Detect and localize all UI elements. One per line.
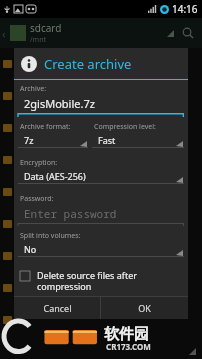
staticText: OK — [138, 302, 151, 314]
staticText: ‹ — [2, 26, 6, 41]
staticText: Encryption: — [20, 158, 58, 168]
button[interactable]: 2gisMobile.7z — [18, 96, 184, 117]
staticText: Data (AES-256) — [24, 170, 86, 182]
button[interactable]: No — [18, 243, 184, 263]
button[interactable]: Enter password — [18, 206, 184, 226]
staticText: Archive: — [20, 84, 47, 94]
other: Recents — [189, 348, 196, 355]
staticText: Delete source files after compression — [37, 269, 184, 292]
staticText: Cancel — [43, 302, 72, 314]
staticText: CR173.COM — [106, 341, 151, 352]
other: Search — [182, 27, 194, 39]
staticText: 7z — [24, 134, 34, 146]
staticText: Fast — [98, 134, 116, 146]
button[interactable]: Delete source files after compression — [18, 269, 184, 296]
button[interactable]: Fast — [92, 134, 184, 154]
staticText: Password: — [20, 194, 54, 204]
button[interactable]: 7z — [18, 134, 88, 154]
button[interactable]: OK — [101, 297, 188, 319]
staticText: Enter password — [24, 206, 117, 221]
staticText: 软件园 — [104, 325, 149, 344]
staticText: No — [24, 243, 37, 255]
staticText: 2gisMobile.7z — [24, 96, 95, 111]
staticText: /mnt — [30, 35, 47, 45]
staticText: Split into volumes: — [20, 231, 81, 241]
button[interactable]: Data (AES-256) — [18, 170, 184, 190]
staticText: Archive format: — [20, 122, 71, 132]
staticText: 14:16 — [172, 2, 198, 16]
staticText: Compression level: — [94, 122, 156, 132]
button[interactable]: Cancel — [14, 297, 100, 319]
staticText: Create archive — [44, 55, 132, 73]
staticText: sdcard — [30, 21, 62, 35]
